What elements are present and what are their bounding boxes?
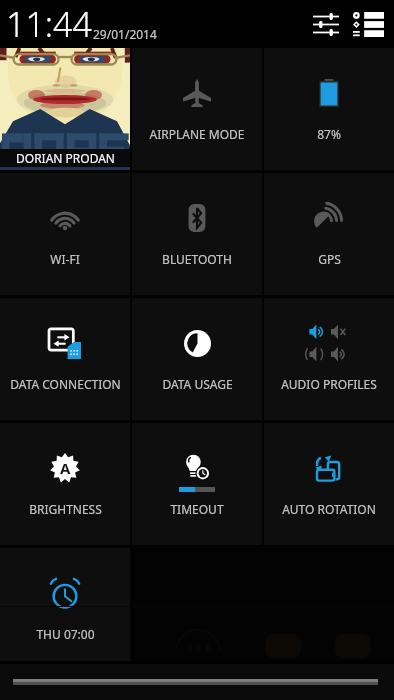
button[interactable]: GPS bbox=[264, 173, 394, 295]
button[interactable]: DATA CONNECTION bbox=[0, 298, 130, 420]
button[interactable]: Quick settings bbox=[310, 8, 342, 40]
staticText: AUDIO PROFILES bbox=[281, 376, 377, 392]
button[interactable]: DORIAN PRODAN bbox=[0, 48, 130, 170]
button[interactable]: WI-FI bbox=[0, 173, 130, 295]
button[interactable]: TIMEOUT bbox=[132, 423, 262, 545]
staticText: AUTO ROTATION bbox=[282, 501, 376, 517]
staticText: DORIAN PRODAN bbox=[16, 150, 115, 166]
button[interactable]: AUDIO PROFILES bbox=[264, 298, 394, 420]
button[interactable]: AIRPLANE MODE bbox=[132, 48, 262, 170]
button[interactable]: 87% bbox=[264, 48, 394, 170]
button[interactable]: AUTO ROTATION bbox=[264, 423, 394, 545]
staticText: 11:44 bbox=[6, 1, 92, 47]
staticText: 29/01/2014 bbox=[93, 26, 157, 42]
staticText: THU 07:00 bbox=[36, 626, 95, 642]
staticText: 87% bbox=[317, 126, 341, 142]
staticText: WI-FI bbox=[50, 251, 80, 267]
staticText: BRIGHTNESS bbox=[29, 501, 102, 517]
staticText: DATA USAGE bbox=[162, 376, 233, 392]
staticText: TIMEOUT bbox=[170, 501, 224, 517]
button[interactable]: THU 07:00 bbox=[0, 548, 130, 661]
button[interactable]: BLUETOOTH bbox=[132, 173, 262, 295]
staticText: A bbox=[60, 458, 71, 478]
button[interactable]: DATA USAGE bbox=[132, 298, 262, 420]
button[interactable]: A bbox=[0, 423, 130, 545]
staticText: DATA CONNECTION bbox=[10, 376, 121, 392]
staticText: GPS bbox=[318, 251, 341, 267]
staticText: BLUETOOTH bbox=[162, 251, 232, 267]
button[interactable]: Notifications bbox=[352, 8, 384, 40]
staticText: AIRPLANE MODE bbox=[149, 126, 245, 142]
